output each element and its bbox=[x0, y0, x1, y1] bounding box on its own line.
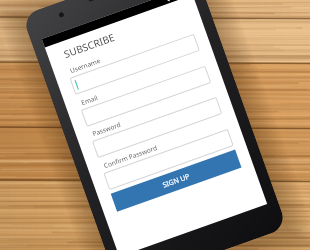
button[interactable] bbox=[69, 34, 200, 95]
button[interactable]: SIGN UP bbox=[111, 150, 241, 212]
staticText: SUBSCRIBE bbox=[62, 30, 116, 61]
staticText: Confirm Password bbox=[102, 143, 158, 170]
staticText: Password bbox=[91, 120, 122, 138]
staticText: Username bbox=[69, 56, 102, 75]
button[interactable] bbox=[81, 66, 211, 127]
staticText: SIGN UP bbox=[161, 172, 191, 190]
button[interactable] bbox=[103, 129, 234, 190]
button[interactable] bbox=[92, 97, 222, 158]
staticText: Email bbox=[80, 93, 99, 107]
